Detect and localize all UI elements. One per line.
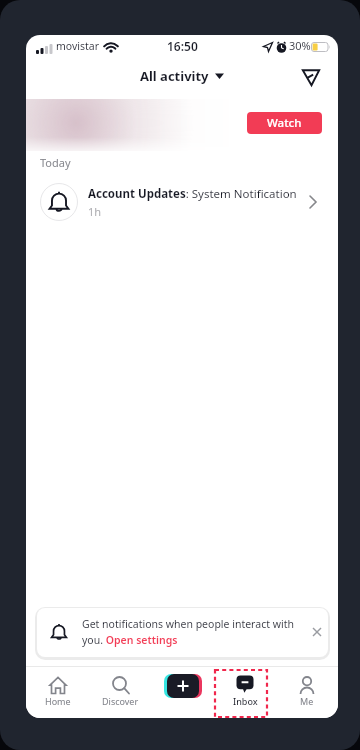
staticText: Today xyxy=(40,155,71,170)
button[interactable]: Get notifications when people interact w… xyxy=(37,608,328,657)
button[interactable] xyxy=(152,667,214,718)
button[interactable]: Me xyxy=(276,667,338,718)
button[interactable] xyxy=(302,69,320,86)
staticText: you. Open settings xyxy=(82,633,178,647)
staticText: All activity xyxy=(140,67,209,85)
staticText: Watch xyxy=(267,115,302,131)
staticText: Inbox xyxy=(233,695,258,707)
staticText: 1h xyxy=(88,204,102,219)
staticText: Account Updates: System Notification xyxy=(88,186,297,202)
button[interactable]: Inbox xyxy=(214,667,276,718)
button[interactable]: Watch xyxy=(247,112,322,134)
button[interactable]: Home xyxy=(26,667,89,718)
staticText: Me xyxy=(300,695,314,707)
staticText: Home xyxy=(45,695,71,707)
staticText: Discover xyxy=(102,695,139,707)
button[interactable] xyxy=(312,627,322,637)
button[interactable]: Discover xyxy=(89,667,152,718)
staticText: 16:50 xyxy=(167,38,198,54)
staticText: Get notifications when people interact w… xyxy=(82,617,294,631)
staticText: movistar xyxy=(56,39,100,53)
button[interactable]: All activity xyxy=(140,67,224,85)
button[interactable]: Account Updates: System Notification xyxy=(26,175,338,235)
staticText: 30% xyxy=(289,38,311,53)
